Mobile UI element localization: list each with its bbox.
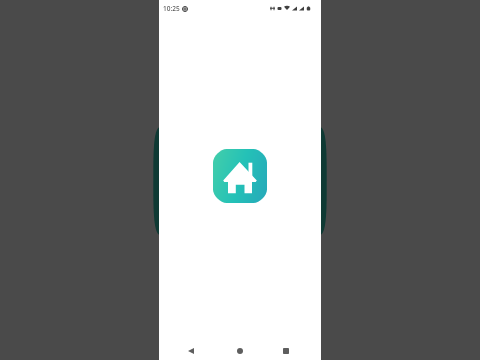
button[interactable]: Home app icon bbox=[213, 149, 267, 203]
button[interactable]: Back bbox=[181, 342, 201, 360]
button[interactable]: Home bbox=[230, 342, 250, 360]
button[interactable]: Recent apps bbox=[276, 342, 296, 360]
staticText: 10:25 bbox=[163, 4, 180, 13]
